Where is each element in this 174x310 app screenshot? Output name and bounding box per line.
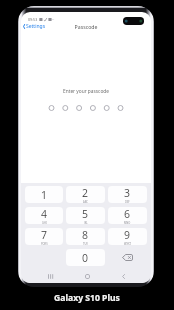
staticText: 48 bbox=[140, 18, 144, 22]
staticText: 0 bbox=[82, 251, 89, 265]
button[interactable]: 3 bbox=[108, 186, 147, 203]
button[interactable]: 1 bbox=[25, 186, 63, 203]
button[interactable]: 5 bbox=[66, 207, 105, 224]
staticText: Passcode bbox=[21, 23, 151, 30]
button[interactable]: 8 bbox=[66, 228, 105, 245]
staticText: Settings bbox=[26, 23, 46, 30]
staticText: WXYZ bbox=[124, 242, 131, 245]
staticText: 09:53 bbox=[28, 17, 38, 22]
staticText: 2 bbox=[82, 186, 89, 200]
staticText: 5 bbox=[82, 207, 89, 221]
staticText: DEF bbox=[125, 200, 130, 203]
staticText: ABC bbox=[83, 200, 88, 203]
staticText: Galaxy S10 Plus bbox=[0, 292, 174, 304]
button[interactable]: 9 bbox=[108, 228, 147, 245]
staticText: 6 bbox=[124, 207, 131, 221]
staticText: GHI bbox=[42, 221, 47, 224]
staticText: MNO bbox=[124, 221, 131, 224]
staticText: JKL bbox=[84, 221, 88, 224]
staticText: 7 bbox=[41, 228, 48, 242]
staticText: PQRS bbox=[41, 242, 48, 245]
button[interactable]: 2 bbox=[66, 186, 105, 203]
button[interactable]: 0 bbox=[66, 249, 105, 266]
staticText: 4 bbox=[41, 207, 48, 221]
staticText: 8 bbox=[82, 228, 89, 242]
button[interactable]: 7 bbox=[25, 228, 63, 245]
staticText: Enter your passcode bbox=[21, 88, 151, 95]
staticText: TUV bbox=[83, 242, 88, 245]
button[interactable]: Home bbox=[75, 270, 99, 283]
button[interactable]: Settings bbox=[22, 23, 47, 30]
button[interactable]: Recents bbox=[38, 270, 62, 283]
button[interactable]: Back bbox=[111, 270, 135, 283]
button[interactable]: 4 bbox=[25, 207, 63, 224]
button[interactable]: 6 bbox=[108, 207, 147, 224]
button[interactable]: Delete bbox=[108, 249, 147, 266]
staticText: 9 bbox=[124, 228, 131, 242]
staticText: 1 bbox=[41, 188, 48, 202]
staticText: 3 bbox=[124, 186, 131, 200]
